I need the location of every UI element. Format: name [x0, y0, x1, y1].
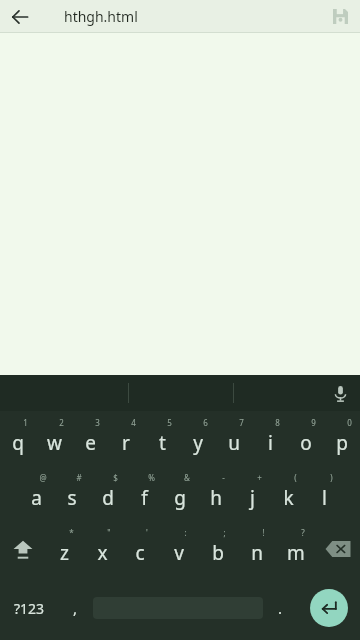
button[interactable]: 6: [180, 411, 216, 466]
staticText: o: [300, 430, 312, 456]
staticText: .: [278, 598, 283, 618]
staticText: r: [122, 430, 130, 456]
button[interactable]: -: [198, 466, 234, 521]
staticText: g: [174, 485, 186, 511]
staticText: +: [257, 472, 262, 483]
staticText: z: [60, 540, 69, 566]
button[interactable]: ,: [58, 576, 93, 640]
staticText: k: [283, 485, 294, 511]
staticText: c: [135, 540, 145, 566]
staticText: i: [268, 430, 273, 456]
staticText: 8: [275, 417, 280, 428]
staticText: j: [250, 485, 255, 511]
staticText: ?123: [14, 599, 45, 618]
staticText: ": [107, 527, 111, 538]
staticText: f: [141, 485, 148, 511]
button[interactable]: :: [159, 521, 198, 576]
staticText: l: [322, 485, 327, 511]
staticText: :: [184, 527, 187, 538]
staticText: s: [67, 485, 77, 511]
staticText: x: [97, 540, 108, 566]
staticText: 6: [203, 417, 208, 428]
staticText: (: [294, 472, 297, 483]
button[interactable]: 3: [72, 411, 108, 466]
button[interactable]: 1: [0, 411, 36, 466]
staticText: n: [251, 540, 263, 566]
button[interactable]: 7: [216, 411, 252, 466]
staticText: ': [146, 527, 148, 538]
staticText: %: [148, 472, 155, 483]
button[interactable]: #: [54, 466, 90, 521]
staticText: 7: [239, 417, 244, 428]
button[interactable]: ): [306, 466, 342, 521]
button[interactable]: ;: [198, 521, 237, 576]
staticText: w: [47, 430, 62, 456]
button[interactable]: 4: [108, 411, 144, 466]
staticText: ?: [301, 527, 305, 538]
button[interactable]: %: [126, 466, 162, 521]
staticText: 9: [311, 417, 316, 428]
button[interactable]: Back: [0, 0, 40, 33]
button[interactable]: Backspace: [315, 521, 360, 576]
staticText: e: [85, 430, 96, 456]
button[interactable]: 9: [288, 411, 324, 466]
staticText: ;: [223, 527, 226, 538]
button[interactable]: @: [18, 466, 54, 521]
button[interactable]: !: [237, 521, 276, 576]
staticText: !: [262, 527, 265, 538]
button[interactable]: +: [234, 466, 270, 521]
staticText: @: [39, 472, 47, 483]
staticText: 5: [167, 417, 172, 428]
staticText: -: [222, 472, 225, 483]
staticText: ,: [73, 598, 78, 618]
staticText: 0: [347, 417, 352, 428]
staticText: a: [31, 485, 42, 511]
staticText: 3: [95, 417, 100, 428]
button[interactable]: &: [162, 466, 198, 521]
button[interactable]: ?123: [0, 576, 58, 640]
staticText: m: [287, 540, 305, 566]
staticText: b: [212, 540, 224, 566]
staticText: $: [113, 472, 118, 483]
staticText: p: [336, 430, 348, 456]
button[interactable]: ?: [276, 521, 315, 576]
staticText: 2: [59, 417, 64, 428]
button[interactable]: .: [263, 576, 298, 640]
button[interactable]: $: [90, 466, 126, 521]
staticText: ): [330, 472, 333, 483]
staticText: q: [12, 430, 24, 456]
button[interactable]: 8: [252, 411, 288, 466]
staticText: u: [228, 430, 240, 456]
button[interactable]: Shift: [0, 521, 45, 576]
staticText: 1: [23, 417, 28, 428]
staticText: hthgh.html: [64, 7, 138, 26]
button[interactable]: 0: [324, 411, 360, 466]
staticText: 4: [131, 417, 136, 428]
staticText: *: [69, 527, 74, 538]
staticText: d: [102, 485, 114, 511]
button[interactable]: ": [83, 521, 121, 576]
staticText: h: [210, 485, 222, 511]
staticText: v: [174, 540, 184, 566]
staticText: y: [193, 430, 203, 456]
button[interactable]: 2: [36, 411, 72, 466]
staticText: t: [159, 430, 166, 456]
button[interactable]: Save: [320, 0, 360, 33]
button[interactable]: Voice input: [320, 375, 360, 411]
button[interactable]: ': [121, 521, 159, 576]
staticText: #: [76, 472, 82, 483]
button[interactable]: (: [270, 466, 306, 521]
button[interactable]: Enter: [310, 589, 348, 627]
button[interactable]: 5: [144, 411, 180, 466]
staticText: &: [184, 472, 190, 483]
button[interactable]: *: [45, 521, 83, 576]
